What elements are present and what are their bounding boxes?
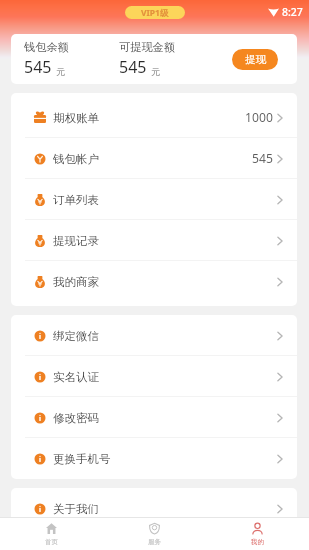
button[interactable]: 更换手机号 (11, 438, 297, 479)
button[interactable]: 服务 (103, 518, 206, 550)
button[interactable]: 钱包帐户 (11, 138, 297, 179)
button[interactable]: 期权账单 (11, 97, 297, 138)
staticText: 545 (252, 150, 273, 167)
staticText: 1000 (245, 109, 273, 126)
button[interactable]: 实名认证 (11, 356, 297, 397)
button[interactable]: 订单列表 (11, 179, 297, 220)
button[interactable]: 我的 (206, 518, 309, 550)
staticText: 关于我们 (53, 502, 99, 516)
staticText: 提现记录 (53, 234, 99, 248)
staticText: VIP1级 (141, 7, 169, 19)
staticText: 我的商家 (53, 275, 99, 289)
button[interactable]: 修改密码 (11, 397, 297, 438)
button[interactable]: 关于我们 (11, 488, 297, 529)
button[interactable]: 提现 (232, 49, 278, 70)
staticText: 修改密码 (53, 411, 99, 425)
staticText: 钱包帐户 (53, 152, 99, 166)
button[interactable]: 我的商家 (11, 261, 297, 302)
staticText: 545 (24, 56, 52, 78)
staticText: 绑定微信 (53, 329, 99, 343)
staticText: 首页 (45, 538, 58, 546)
staticText: 可提现金额 (119, 40, 175, 54)
staticText: 8:27 (282, 5, 303, 19)
staticText: 实名认证 (53, 370, 99, 384)
staticText: 我的 (251, 538, 264, 546)
staticText: 钱包余额 (24, 40, 69, 54)
staticText: 提现 (245, 53, 266, 66)
staticText: 元 (151, 66, 160, 77)
staticText: 545 (119, 56, 147, 78)
staticText: 服务 (148, 538, 161, 546)
staticText: 更换手机号 (53, 452, 111, 466)
staticText: 元 (56, 66, 65, 77)
staticText: 订单列表 (53, 193, 99, 207)
staticText: 期权账单 (53, 111, 99, 125)
button[interactable]: 首页 (0, 518, 103, 550)
button[interactable]: 提现记录 (11, 220, 297, 261)
button[interactable]: VIP1级 (125, 6, 185, 19)
button[interactable]: 绑定微信 (11, 315, 297, 356)
